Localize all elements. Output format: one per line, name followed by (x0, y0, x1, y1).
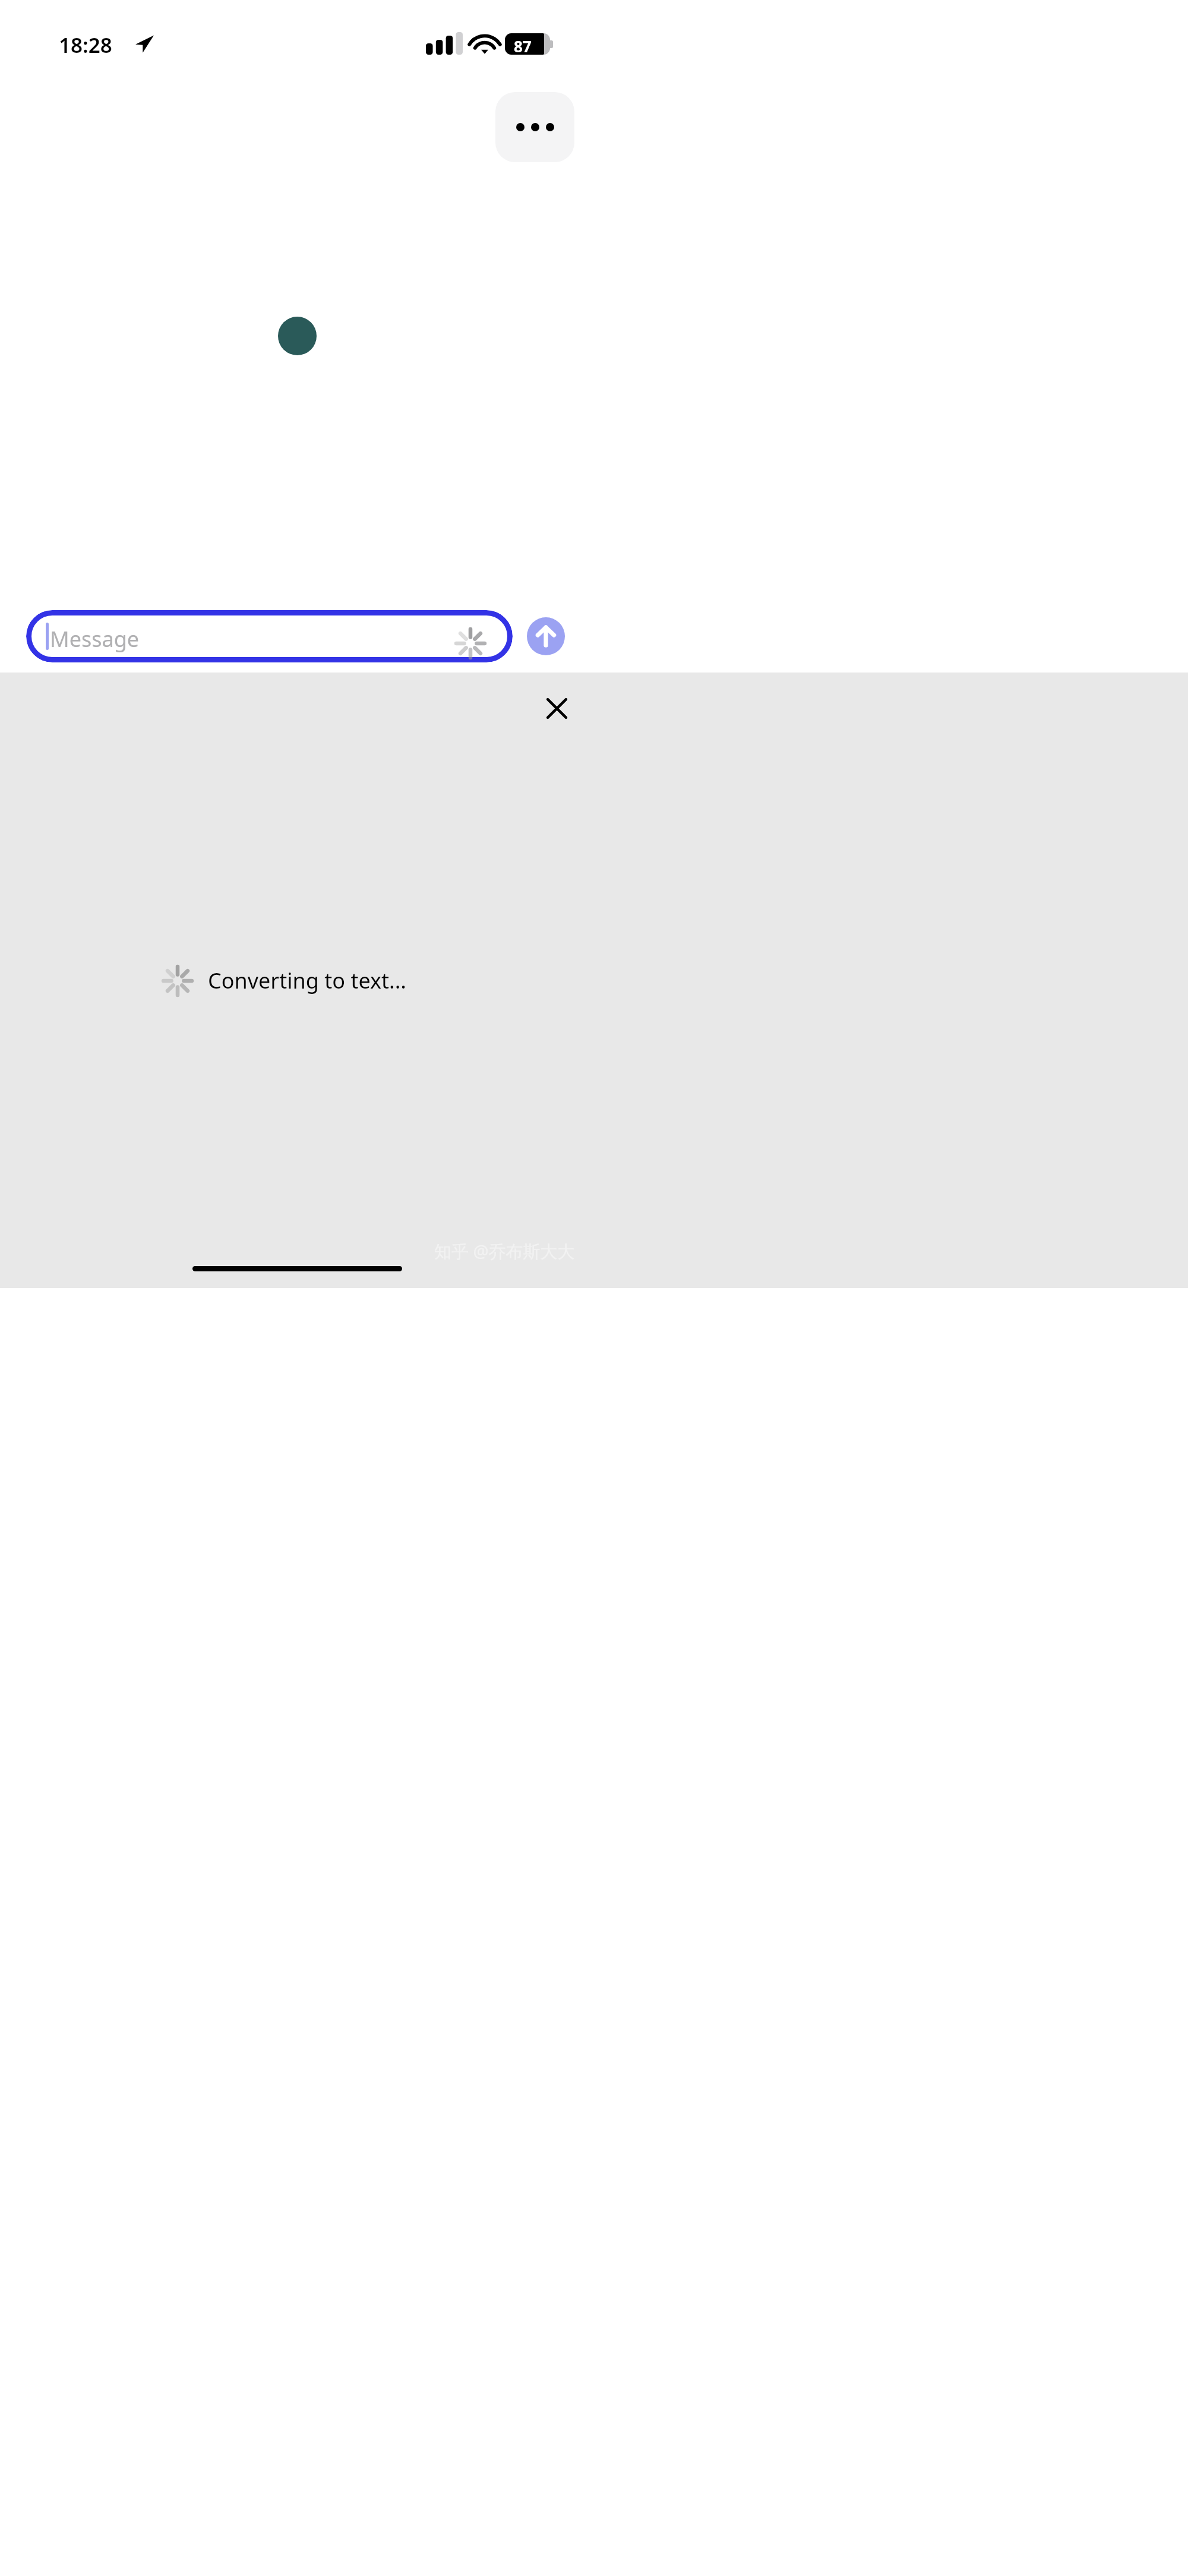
button[interactable]: Close (535, 686, 579, 731)
button[interactable]: More options (495, 92, 574, 162)
staticText: Converting to text... (208, 966, 406, 995)
button[interactable]: Send (527, 617, 565, 655)
button[interactable]: Message (26, 610, 513, 662)
staticText: Message (50, 624, 140, 654)
staticText: 87 (514, 36, 532, 56)
staticText: 18:28 (59, 31, 112, 59)
staticText: 知乎 @乔布斯大大 (434, 1239, 575, 1263)
